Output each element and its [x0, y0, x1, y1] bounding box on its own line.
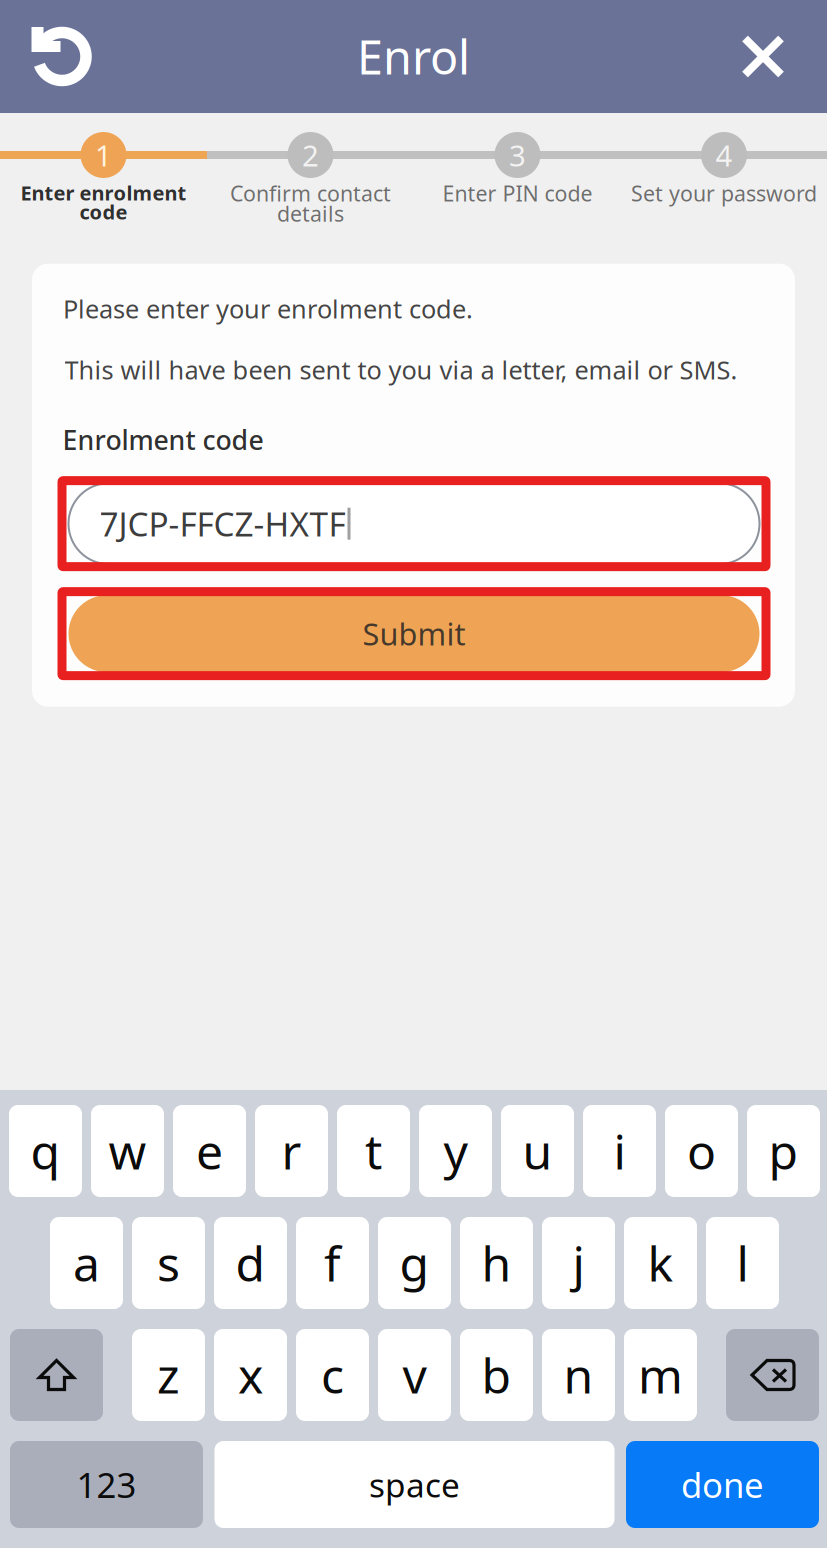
button[interactable]: i	[583, 1105, 656, 1197]
staticText: c	[321, 1343, 344, 1407]
button[interactable]: x	[214, 1329, 287, 1421]
staticText: g	[399, 1231, 429, 1295]
staticText: t	[365, 1119, 382, 1183]
button[interactable]: g	[378, 1217, 451, 1309]
staticText: 2	[302, 135, 319, 174]
button[interactable]: 123	[10, 1441, 203, 1528]
button[interactable]: j	[542, 1217, 615, 1309]
button[interactable]: e	[173, 1105, 246, 1197]
staticText: o	[687, 1119, 716, 1183]
button[interactable]: l	[706, 1217, 779, 1309]
staticText: s	[157, 1231, 180, 1295]
staticText: i	[613, 1119, 625, 1183]
staticText: y	[443, 1119, 467, 1183]
button[interactable]: w	[91, 1105, 164, 1197]
staticText: u	[522, 1119, 552, 1183]
staticText: 123	[76, 1461, 136, 1507]
staticText: e	[196, 1119, 223, 1183]
staticText: Enter PIN code	[442, 179, 592, 207]
button[interactable]: y	[419, 1105, 492, 1197]
staticText: Set your password	[631, 179, 817, 207]
staticText: 3	[509, 135, 526, 174]
button[interactable]: Submit	[57, 587, 770, 680]
staticText: b	[481, 1343, 511, 1407]
staticText: j	[572, 1231, 584, 1295]
button[interactable]: p	[747, 1105, 820, 1197]
button[interactable]: v	[378, 1329, 451, 1421]
button[interactable]: r	[255, 1105, 328, 1197]
button[interactable]: a	[50, 1217, 123, 1309]
button[interactable]: n	[542, 1329, 615, 1421]
staticText: v	[402, 1343, 426, 1407]
staticText: d	[235, 1231, 265, 1295]
staticText: 1	[95, 135, 112, 174]
button[interactable]: u	[501, 1105, 574, 1197]
staticText: h	[481, 1231, 511, 1295]
button[interactable]: space	[214, 1441, 614, 1528]
button[interactable]: q	[9, 1105, 82, 1197]
staticText: 7JCP-FFCZ-HXTF	[99, 501, 345, 546]
staticText: code	[79, 198, 127, 225]
button[interactable]: m	[624, 1329, 697, 1421]
button[interactable]: d	[214, 1217, 287, 1309]
staticText: x	[238, 1343, 263, 1407]
staticText: 4	[715, 135, 732, 174]
staticText: This will have been sent to you via a le…	[64, 353, 737, 386]
staticText: Submit	[362, 613, 465, 654]
staticText: m	[638, 1343, 683, 1407]
button[interactable]: Delete	[726, 1329, 819, 1421]
staticText: done	[681, 1461, 764, 1507]
button[interactable]: h	[460, 1217, 533, 1309]
staticText: Enter enrolment	[20, 179, 186, 206]
button[interactable]: k	[624, 1217, 697, 1309]
staticText: Confirm contact	[230, 179, 391, 207]
staticText: p	[768, 1119, 798, 1183]
staticText: Please enter your enrolment code.	[63, 292, 473, 325]
staticText: w	[108, 1119, 146, 1183]
button[interactable]: done	[626, 1441, 819, 1528]
button[interactable]: Close	[699, 0, 827, 113]
staticText: n	[563, 1343, 593, 1407]
button[interactable]: t	[337, 1105, 410, 1197]
staticText: r	[281, 1119, 301, 1183]
staticText: space	[369, 1462, 460, 1507]
staticText: k	[647, 1231, 673, 1295]
staticText: f	[324, 1231, 341, 1295]
button[interactable]: Back	[0, 0, 124, 113]
staticText: Enrolment code	[62, 421, 263, 458]
button[interactable]: f	[296, 1217, 369, 1309]
staticText: l	[736, 1231, 748, 1295]
button[interactable]: o	[665, 1105, 738, 1197]
button[interactable]: Shift	[10, 1329, 103, 1421]
staticText: Enrol	[357, 25, 470, 87]
staticText: details	[277, 199, 344, 228]
button[interactable]: z	[132, 1329, 205, 1421]
staticText: q	[30, 1119, 60, 1183]
button[interactable]: b	[460, 1329, 533, 1421]
staticText: z	[157, 1343, 180, 1407]
button[interactable]: c	[296, 1329, 369, 1421]
button[interactable]: s	[132, 1217, 205, 1309]
staticText: a	[73, 1231, 100, 1295]
